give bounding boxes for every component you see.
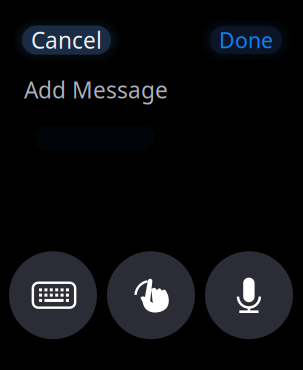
button[interactable]: Scribble [107, 251, 195, 339]
staticText: Done [219, 26, 273, 54]
button[interactable]: Keyboard [9, 251, 97, 339]
button[interactable]: Dictation [205, 251, 293, 339]
button[interactable]: Done [210, 26, 282, 54]
button[interactable]: Cancel [22, 25, 111, 55]
staticText: Cancel [31, 25, 102, 55]
staticText: Add Message [24, 75, 168, 105]
